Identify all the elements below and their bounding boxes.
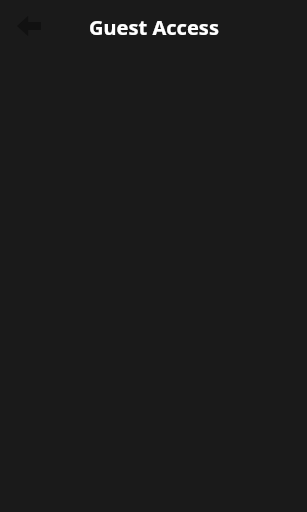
staticText: Guest Access [89,14,219,41]
button[interactable]: Back [9,8,49,44]
